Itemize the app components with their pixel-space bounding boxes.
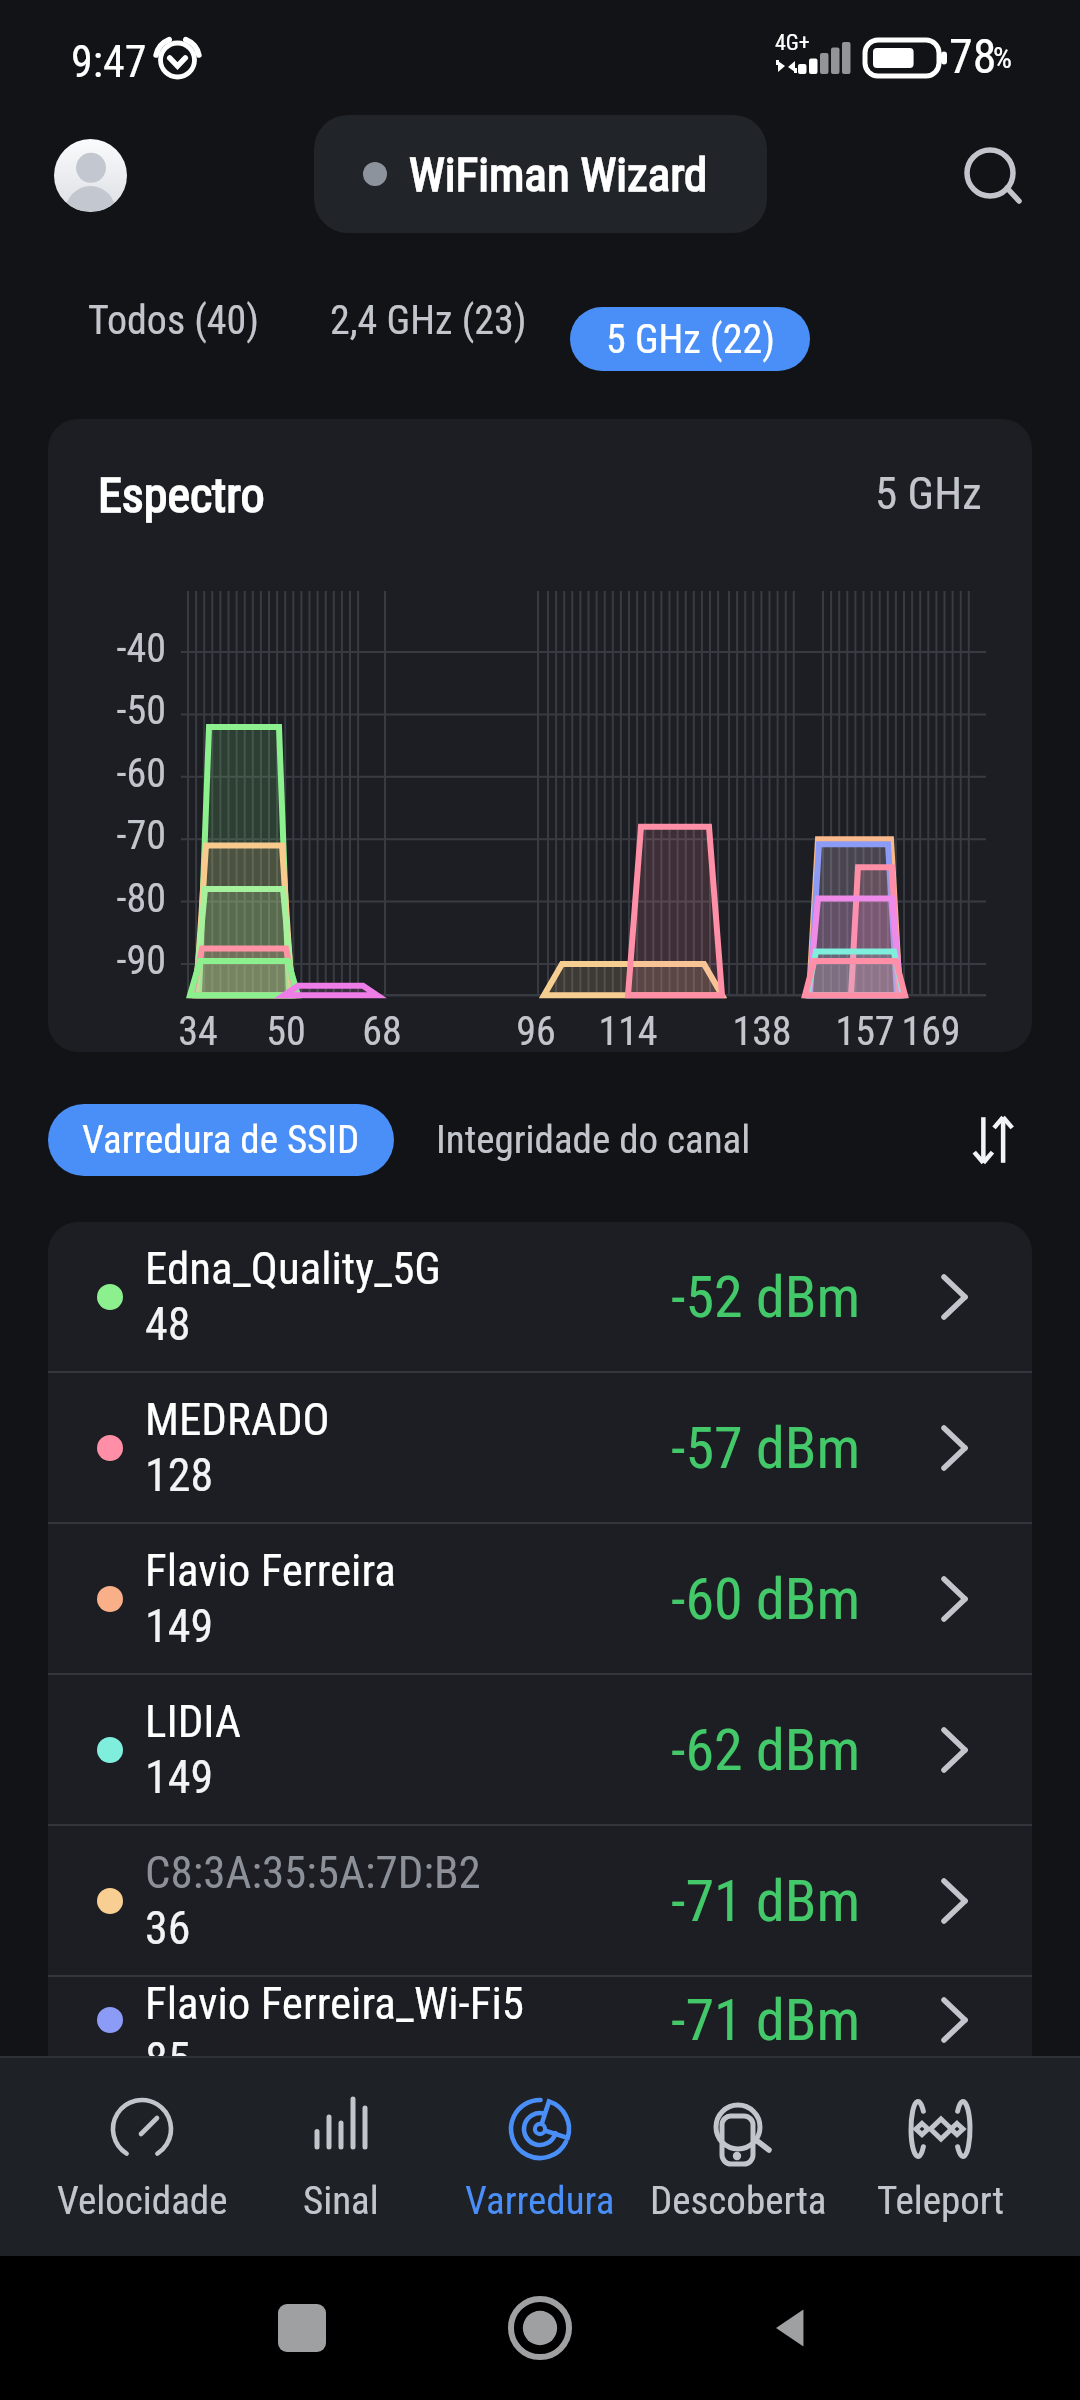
button[interactable]: Flavio Ferreira_Wi-Fi5 [48, 1977, 1032, 2062]
button[interactable]: Sort order [956, 1102, 1032, 1178]
staticText: -62 dBm [671, 1716, 861, 1784]
staticText: Espectro [98, 467, 265, 523]
staticText: MEDRADO [145, 1393, 330, 1446]
staticText: -57 dBm [671, 1414, 861, 1482]
staticText: -52 dBm [671, 1263, 861, 1331]
staticText: Flavio Ferreira_Wi-Fi5 [145, 1977, 524, 2030]
button[interactable]: Descoberta [639, 2058, 837, 2256]
staticText: 5 GHz (22) [606, 316, 775, 363]
staticText: % [993, 40, 1012, 75]
staticText: -70 [48, 812, 166, 859]
button[interactable]: Flavio Ferreira [48, 1524, 1032, 1673]
button[interactable]: Varredura de SSID [48, 1104, 394, 1176]
staticText: 4G+ [775, 30, 810, 56]
staticText: -71 dBm [671, 1986, 861, 2054]
button[interactable]: Search [960, 140, 1030, 210]
staticText: 68 [342, 1008, 422, 1052]
staticText: 36 [145, 1901, 191, 1955]
button[interactable]: C8:3A:35:5A:7D:B2 [48, 1826, 1032, 1975]
button[interactable]: Edna_Quality_5G [48, 1222, 1032, 1371]
button[interactable]: LIDIA [48, 1675, 1032, 1824]
staticText: Edna_Quality_5G [145, 1242, 441, 1295]
button[interactable]: Sinal [242, 2058, 440, 2256]
button[interactable]: Recents [278, 2304, 326, 2352]
staticText: 85 [145, 2032, 191, 2062]
button[interactable]: Home [507, 2295, 573, 2361]
button[interactable]: 5 GHz (22) [570, 307, 810, 371]
staticText: -80 [48, 875, 166, 922]
button[interactable]: Integridade do canal [436, 1105, 751, 1175]
button[interactable]: Todos (40) [60, 278, 288, 362]
staticText: 2,4 GHz (23) [330, 297, 527, 344]
staticText: 34 [158, 1008, 238, 1052]
button[interactable]: Velocidade [43, 2058, 241, 2256]
staticText: -90 [48, 937, 166, 984]
button[interactable]: Varredura [441, 2058, 639, 2256]
staticText: Descoberta [650, 2178, 827, 2224]
staticText: 138 [722, 1008, 802, 1052]
staticText: -60 dBm [671, 1565, 861, 1633]
staticText: 149 [145, 1599, 214, 1653]
staticText: -50 [48, 687, 166, 734]
staticText: 9:47 [71, 36, 147, 88]
button[interactable]: Teleport [842, 2058, 1040, 2256]
staticText: 96 [496, 1008, 576, 1052]
staticText: -60 [48, 750, 166, 797]
staticText: 78 [949, 28, 997, 84]
staticText: -40 [48, 625, 166, 672]
staticText: 157 [825, 1008, 905, 1052]
staticText: 114 [588, 1008, 668, 1052]
staticText: -71 dBm [671, 1867, 861, 1935]
staticText: Sinal [303, 2178, 379, 2224]
staticText: WiFiman Wizard [409, 147, 708, 202]
staticText: 169 [891, 1008, 971, 1052]
staticText: C8:3A:35:5A:7D:B2 [145, 1846, 481, 1899]
staticText: Velocidade [57, 2178, 228, 2224]
staticText: Varredura [465, 2178, 615, 2224]
staticText: 128 [145, 1448, 214, 1502]
button[interactable]: 2,4 GHz (23) [302, 278, 555, 362]
staticText: 149 [145, 1750, 214, 1804]
button[interactable]: Account [54, 139, 127, 212]
button[interactable]: Back [762, 2300, 818, 2356]
staticText: 5 GHz [875, 467, 982, 520]
staticText: Todos (40) [88, 297, 260, 344]
staticText: 50 [246, 1008, 326, 1052]
staticText: Flavio Ferreira [145, 1544, 396, 1597]
button[interactable]: WiFiman Wizard [314, 115, 767, 233]
staticText: LIDIA [145, 1695, 241, 1748]
staticText: 48 [145, 1297, 191, 1351]
staticText: Varredura de SSID [82, 1117, 360, 1163]
staticText: Teleport [877, 2178, 1005, 2224]
button[interactable]: MEDRADO [48, 1373, 1032, 1522]
